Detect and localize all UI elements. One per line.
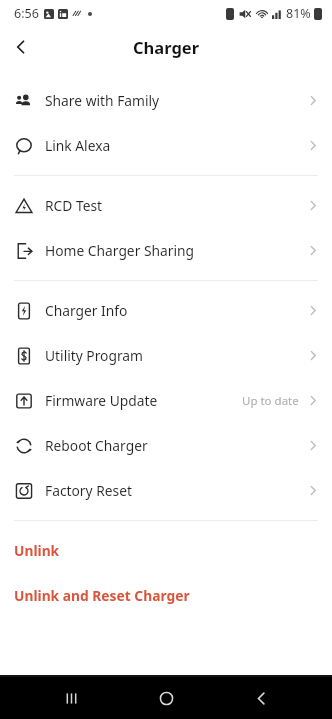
staticText: Charger Info xyxy=(45,301,128,320)
button[interactable]: Firmware Update xyxy=(0,378,332,423)
staticText: Factory Reset xyxy=(45,481,132,500)
staticText: Link Alexa xyxy=(45,136,111,155)
button[interactable]: Recents xyxy=(47,677,95,719)
staticText: RCD Test xyxy=(45,196,103,215)
button[interactable]: Home Charger Sharing xyxy=(0,228,332,273)
staticText: 81% xyxy=(286,5,311,22)
button[interactable]: Utility Program xyxy=(0,333,332,378)
staticText: Utility Program xyxy=(45,346,144,365)
button[interactable]: Back xyxy=(0,26,42,68)
staticText: Home Charger Sharing xyxy=(45,241,195,260)
button[interactable]: Home xyxy=(142,677,190,719)
button[interactable]: Reboot Charger xyxy=(0,423,332,468)
staticText: Unlink and Reset Charger xyxy=(14,586,190,605)
button[interactable]: Unlink and Reset Charger xyxy=(0,573,332,618)
button[interactable]: Factory Reset xyxy=(0,468,332,513)
staticText: Charger xyxy=(133,36,200,58)
staticText: Firmware Update xyxy=(45,391,158,410)
staticText: Share with Family xyxy=(45,91,160,110)
button[interactable]: Link Alexa xyxy=(0,123,332,168)
staticText: Unlink xyxy=(14,541,60,560)
button[interactable]: Share with Family xyxy=(0,78,332,123)
staticText: Up to date xyxy=(242,393,299,409)
staticText: Reboot Charger xyxy=(45,436,148,455)
staticText: 6:56 xyxy=(14,5,39,22)
button[interactable]: Unlink xyxy=(0,528,332,573)
button[interactable]: Charger Info xyxy=(0,288,332,333)
button[interactable]: RCD Test xyxy=(0,183,332,228)
button[interactable]: Back xyxy=(237,677,285,719)
